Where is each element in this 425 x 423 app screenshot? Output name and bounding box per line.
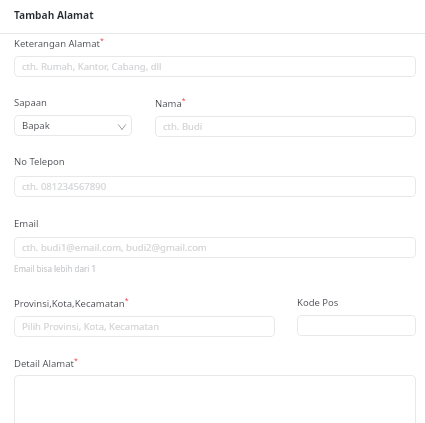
button[interactable]: Detail Alamat bbox=[14, 375, 416, 423]
staticText: Tambah Alamat bbox=[14, 8, 94, 22]
other: Open Sapaan dropdown bbox=[118, 120, 126, 132]
button[interactable]: Bapak bbox=[14, 115, 132, 136]
staticText: Bapak bbox=[22, 119, 50, 132]
staticText: cth. 081234567890 bbox=[22, 180, 107, 193]
staticText: Kode Pos bbox=[297, 296, 339, 309]
staticText: cth. Budi bbox=[163, 120, 203, 133]
staticText: Email bbox=[14, 217, 39, 230]
staticText: Pilih Provinsi, Kota, Kecamatan bbox=[22, 320, 160, 333]
staticText: Detail Alamat* bbox=[14, 356, 78, 370]
staticText: Nama* bbox=[155, 96, 186, 110]
button[interactable]: cth. Rumah, Kantor, Cabang, dll bbox=[14, 56, 416, 77]
button[interactable]: Kode Pos bbox=[297, 315, 416, 336]
button[interactable]: cth. budi1@email.com, budi2@gmail.com bbox=[14, 237, 416, 258]
staticText: Provinsi,Kota,Kecamatan* bbox=[14, 296, 129, 310]
button[interactable]: cth. 081234567890 bbox=[14, 176, 416, 197]
staticText: No Telepon bbox=[14, 155, 65, 168]
button[interactable]: Pilih Provinsi, Kota, Kecamatan bbox=[14, 316, 275, 337]
staticText: Email bisa lebih dari 1 bbox=[14, 263, 97, 274]
staticText: Sapaan bbox=[14, 96, 47, 109]
staticText: cth. Rumah, Kantor, Cabang, dll bbox=[22, 60, 162, 73]
button[interactable]: cth. Budi bbox=[155, 116, 416, 137]
staticText: Keterangan Alamat* bbox=[14, 36, 104, 50]
staticText: cth. budi1@email.com, budi2@gmail.com bbox=[22, 241, 207, 254]
